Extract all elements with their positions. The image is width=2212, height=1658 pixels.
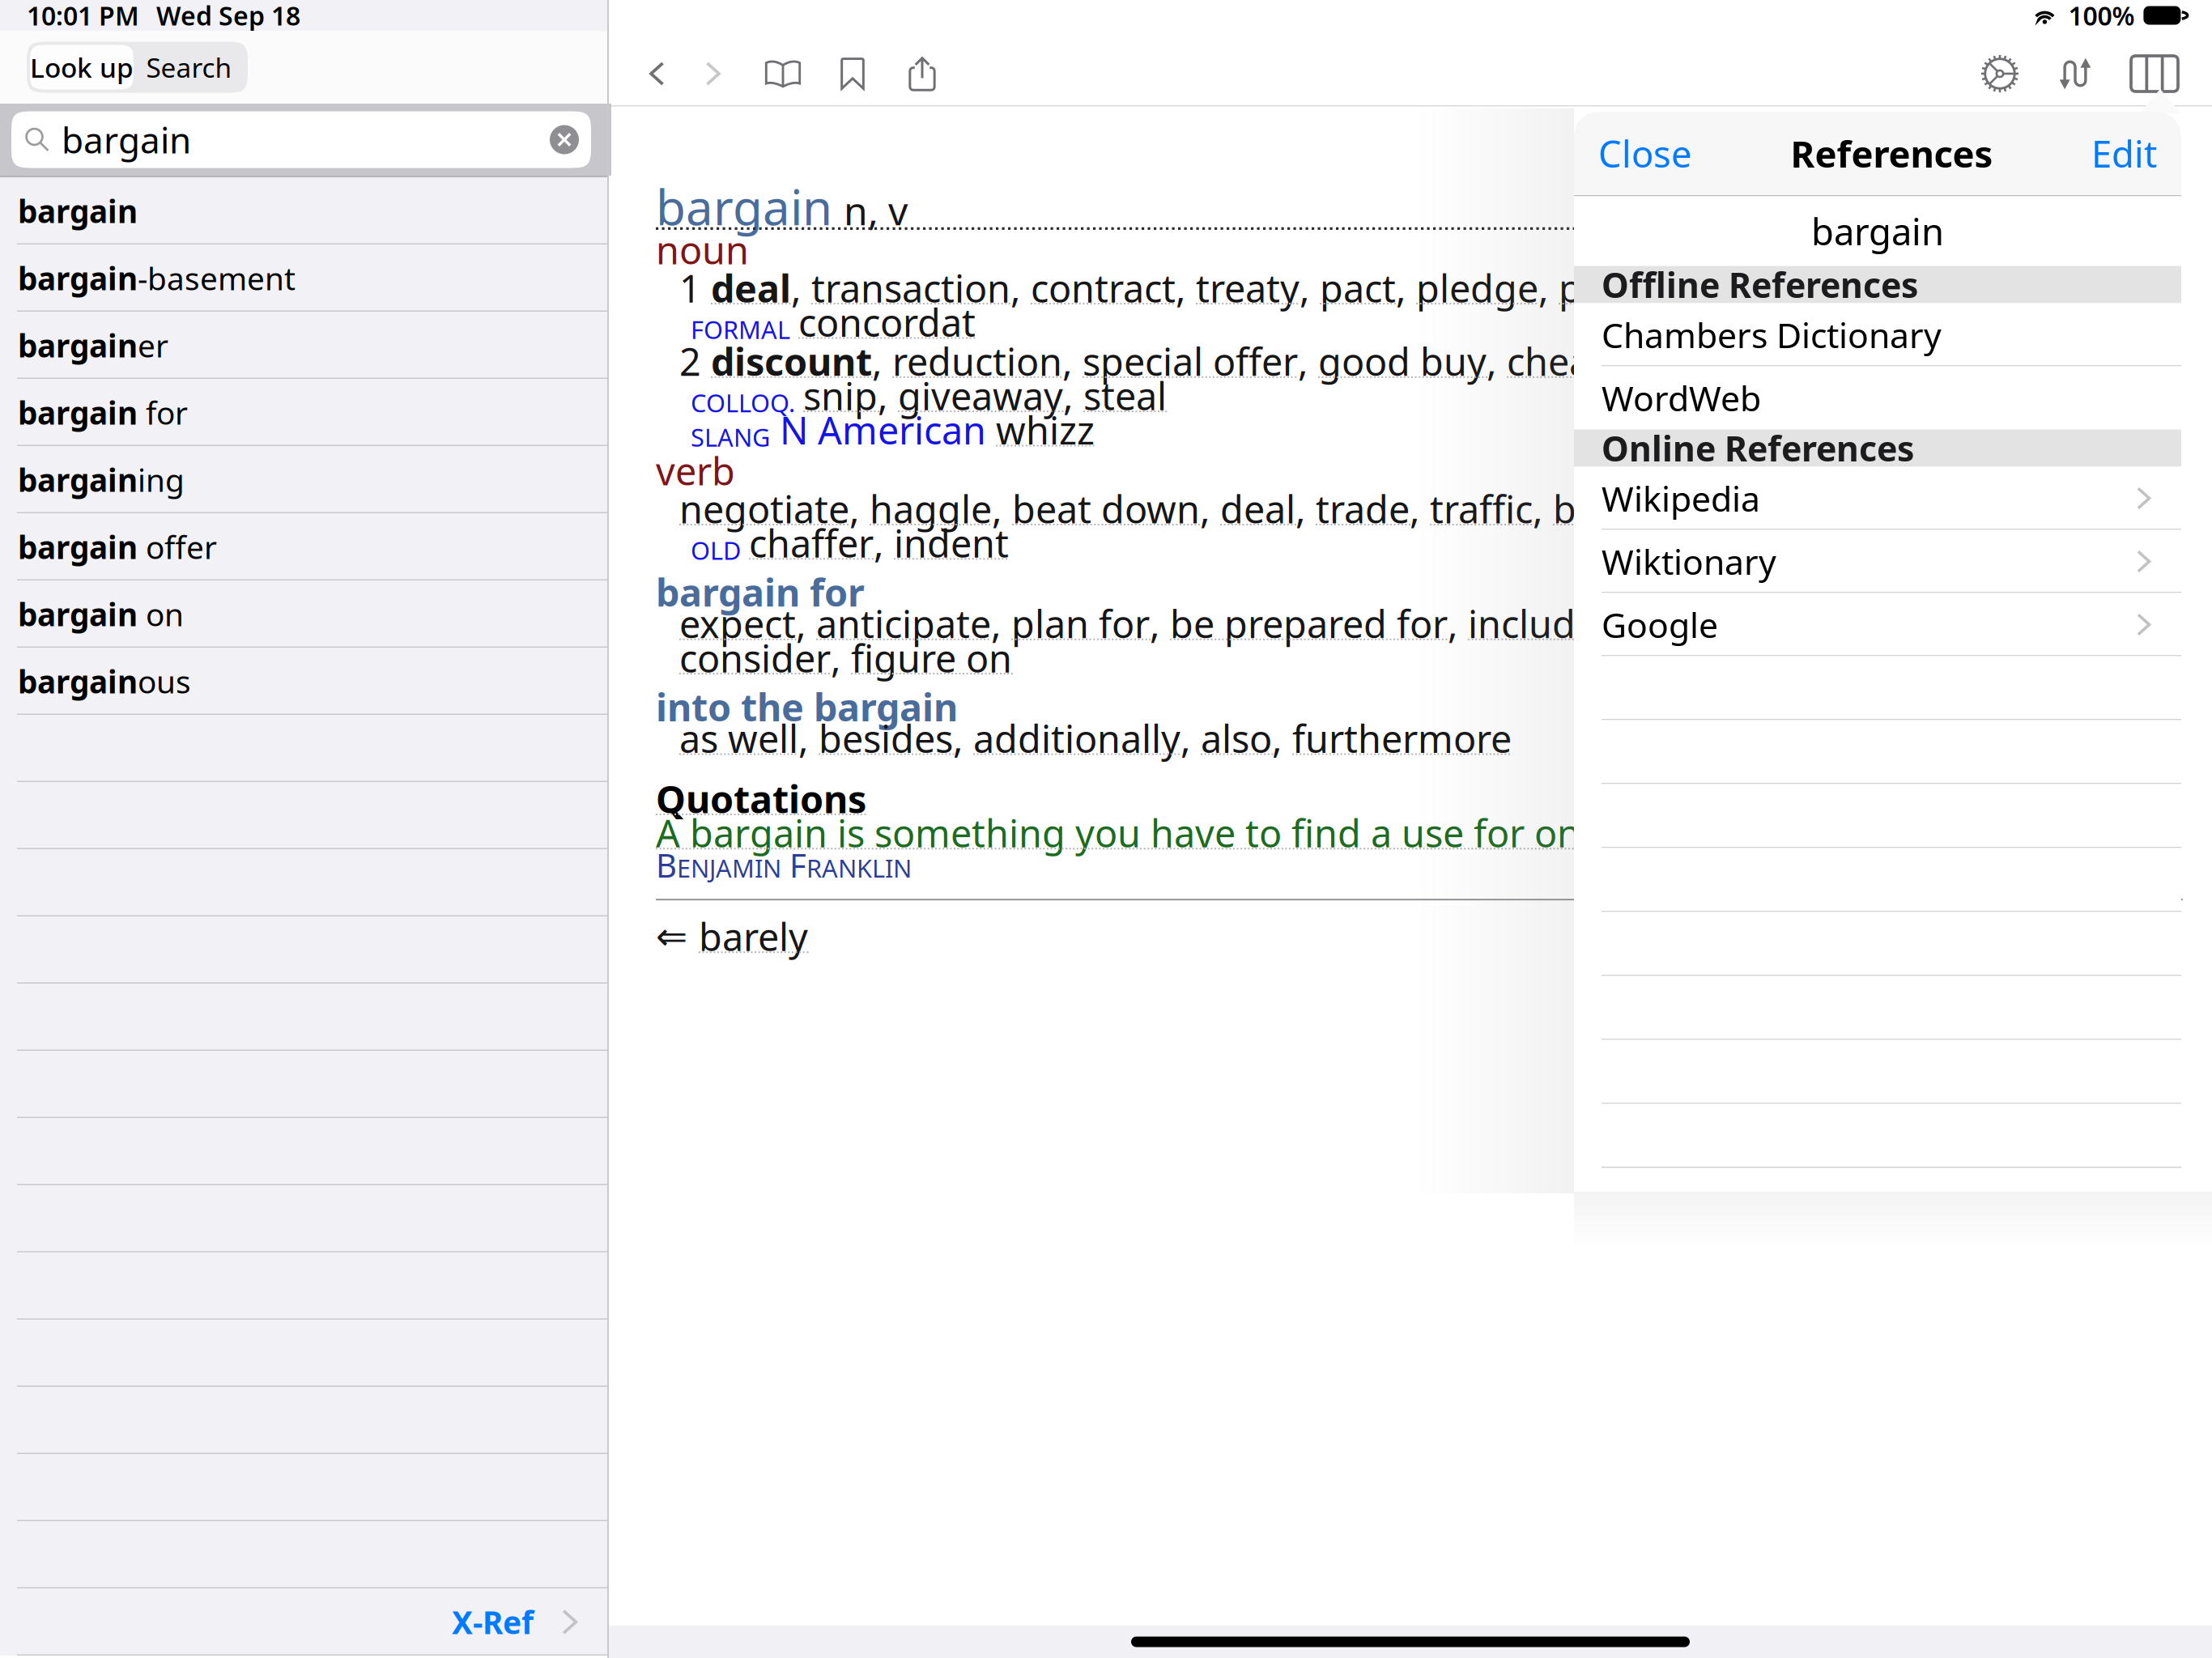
- staticText: ,: [878, 370, 898, 421]
- staticText: ,: [796, 598, 816, 649]
- button[interactable]: Edit: [2091, 139, 2157, 168]
- staticText: reduction: [892, 336, 1062, 386]
- staticText: N American: [1675, 484, 1882, 534]
- staticText: Search: [146, 49, 232, 85]
- staticText: chaffer: [749, 518, 874, 568]
- staticText: noun: [656, 225, 749, 275]
- button[interactable]: Bookmarks: [834, 55, 871, 92]
- staticText: COLLOQ.: [691, 386, 795, 419]
- staticText: consider: [679, 633, 831, 683]
- staticText: on: [138, 593, 184, 635]
- staticText: ,: [872, 336, 892, 386]
- staticText: Edit: [2091, 129, 2157, 178]
- staticText: Look up: [30, 49, 134, 85]
- button[interactable]: Switch dictionary: [2057, 55, 2094, 92]
- staticText: covenant: [1724, 263, 1886, 313]
- staticText: ,: [1410, 484, 1430, 534]
- staticText: deal: [711, 263, 791, 313]
- staticText: trade: [1316, 484, 1410, 534]
- button[interactable]: Dictionary list: [764, 55, 802, 92]
- staticText: RANKLIN: [806, 851, 912, 884]
- staticText: pledge: [1416, 263, 1538, 313]
- staticText: ENJAMIN: [677, 851, 781, 884]
- staticText: Chambers Dictionary: [1602, 312, 1942, 358]
- button[interactable]: bargain: [0, 244, 607, 312]
- button[interactable]: Chambers Dictionary: [1574, 303, 2181, 366]
- staticText: plan for: [1011, 598, 1150, 649]
- staticText: deal: [1220, 484, 1295, 534]
- staticText: ,: [1533, 484, 1553, 534]
- staticText: bargain: [18, 190, 138, 232]
- button[interactable]: bargain: [0, 513, 607, 580]
- staticText: Wiktionary: [1602, 539, 1776, 584]
- staticText: bonanza: [2017, 336, 2170, 386]
- button[interactable]: bargain: [0, 648, 607, 715]
- staticText: also: [1201, 713, 1272, 763]
- button[interactable]: X-Ref: [0, 1588, 607, 1656]
- button[interactable]: bargain: [0, 177, 607, 244]
- staticText: Close: [1598, 129, 1692, 178]
- staticText: bargain: [18, 257, 138, 299]
- staticText: ,: [1150, 598, 1170, 649]
- button[interactable]: bargain: [0, 312, 607, 379]
- button[interactable]: Settings: [1980, 54, 2019, 93]
- staticText: ,: [1538, 263, 1559, 313]
- staticText: ,: [1176, 263, 1196, 313]
- staticText: haggle: [870, 484, 992, 534]
- staticText: -basement: [138, 257, 296, 299]
- staticText: bargain: [62, 116, 191, 163]
- button[interactable]: Google: [1574, 593, 2181, 656]
- button[interactable]: Wikipedia: [1574, 467, 2181, 530]
- staticText: ,: [1063, 370, 1083, 421]
- button[interactable]: Wiktionary: [1574, 530, 2181, 593]
- staticText: ,: [849, 484, 870, 534]
- staticText: additionally: [973, 713, 1180, 763]
- staticText: B: [656, 843, 677, 886]
- staticText: n, v: [844, 184, 908, 236]
- button[interactable]: bargain: [0, 379, 607, 446]
- staticText: ous: [138, 660, 191, 702]
- button[interactable]: Clear search: [550, 125, 579, 154]
- staticText: traffic: [1430, 484, 1533, 534]
- staticText: beat down: [1012, 484, 1200, 534]
- button[interactable]: Look up: [30, 45, 134, 89]
- staticText: ,: [1448, 598, 1468, 649]
- staticText: discount: [711, 336, 872, 386]
- staticText: ,: [1396, 263, 1416, 313]
- button[interactable]: bargain: [0, 580, 607, 648]
- staticText: bargain: [656, 174, 832, 239]
- staticText: 1: [679, 263, 711, 313]
- button[interactable]: Back: [643, 59, 672, 88]
- button[interactable]: Forward: [698, 59, 727, 88]
- staticText: ,: [798, 713, 819, 763]
- staticText: giveaway: [898, 370, 1063, 421]
- staticText: ,: [1690, 336, 1710, 386]
- staticText: whizz: [996, 405, 1095, 455]
- staticText: pact: [1320, 263, 1396, 313]
- button[interactable]: References: [2131, 56, 2178, 91]
- staticText: agreement: [1906, 263, 2101, 313]
- staticText: broke: [1553, 484, 1655, 534]
- staticText: F: [781, 843, 806, 886]
- staticText: concordat: [798, 297, 976, 347]
- staticText: 100%: [2068, 0, 2135, 33]
- staticText: broker: [1891, 484, 2009, 534]
- staticText: indent: [894, 518, 1009, 568]
- staticText: promise: [1559, 263, 1704, 313]
- staticText: be prepared for: [1170, 598, 1448, 649]
- button[interactable]: WordWeb: [1574, 366, 2181, 429]
- staticText: anticipate: [816, 598, 991, 649]
- staticText: bargain: [18, 392, 138, 433]
- staticText: bargain: [18, 660, 138, 702]
- staticText: ,: [1704, 263, 1724, 313]
- staticText: SLANG: [691, 420, 770, 453]
- staticText: into the bargain: [656, 682, 958, 732]
- staticText: as well: [679, 713, 798, 763]
- button[interactable]: Share: [904, 55, 941, 92]
- staticText: bargain: [18, 324, 138, 366]
- button[interactable]: Search: [134, 45, 245, 89]
- staticText: N American: [780, 405, 986, 455]
- button[interactable]: Close: [1598, 139, 1692, 168]
- button[interactable]: bargain: [0, 446, 607, 513]
- staticText: Wikipedia: [1602, 475, 1760, 521]
